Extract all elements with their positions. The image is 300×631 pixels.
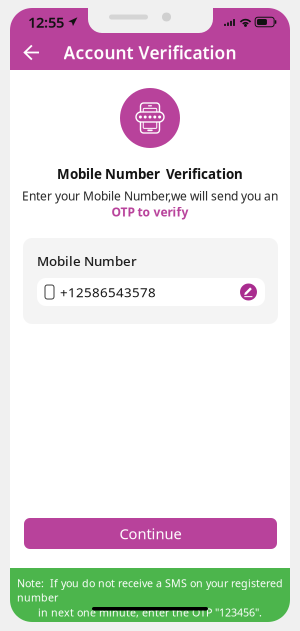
staticText: Mobile Number Verification <box>57 165 243 183</box>
staticText: Account Verification <box>63 41 236 64</box>
staticText: +12586543578 <box>60 283 156 301</box>
button[interactable]: Continue <box>24 518 277 549</box>
button[interactable]: Back <box>15 36 47 68</box>
button[interactable]: Edit mobile number <box>240 283 257 300</box>
staticText: Enter your Mobile Number,we will send yo… <box>22 188 278 204</box>
staticText: OTP to verify <box>111 204 188 220</box>
staticText: Note: If you do not receive a SMS on you… <box>17 576 283 604</box>
staticText: 12:55 <box>28 12 64 32</box>
staticText: in next one minute, enter the OTP "12345… <box>38 605 262 619</box>
staticText: Mobile Number <box>37 252 137 270</box>
staticText: Continue <box>119 524 181 543</box>
